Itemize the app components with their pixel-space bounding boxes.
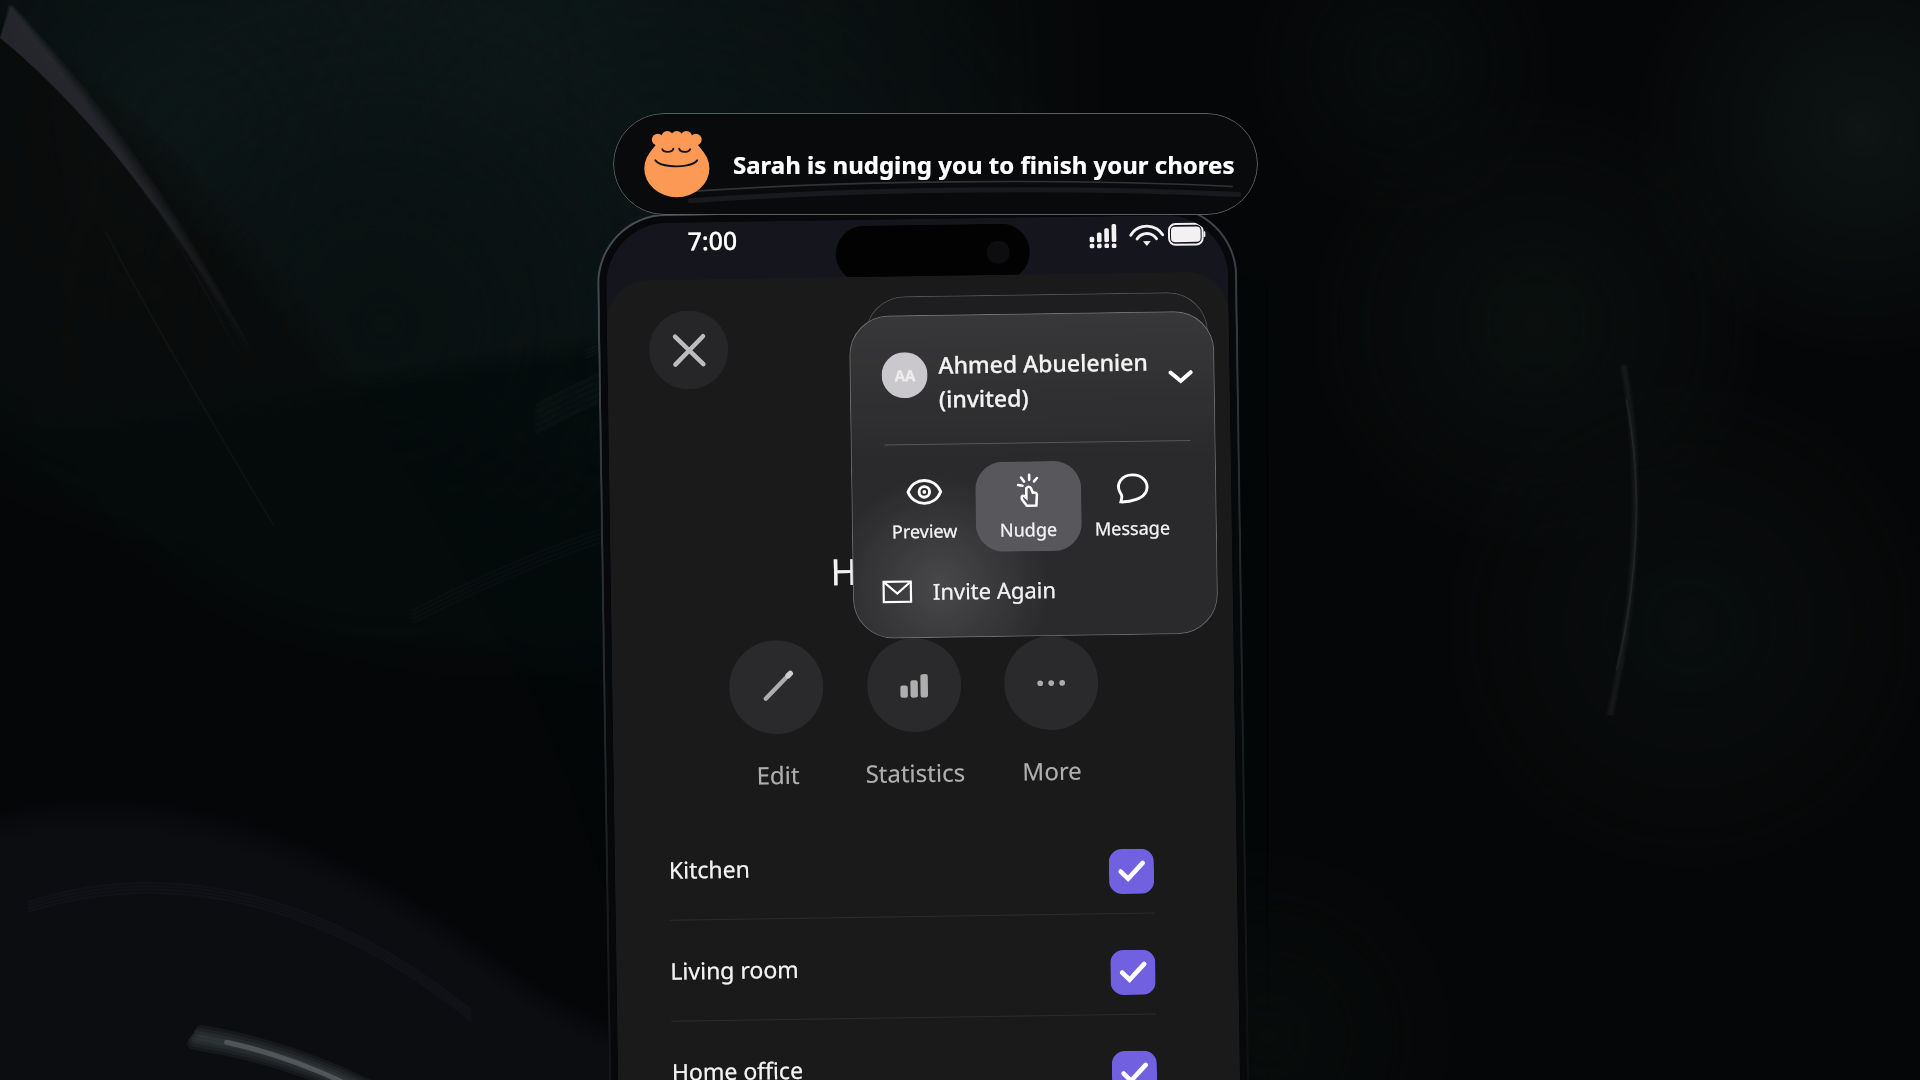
staticText: Sarah is nudging you to finish your chor… — [733, 148, 1235, 181]
staticText: Home — [830, 546, 934, 596]
staticText: Invite Again — [933, 574, 1057, 606]
button[interactable]: Expand — [1163, 359, 1198, 393]
staticText: Edit — [756, 758, 800, 791]
button[interactable]: Living room — [670, 913, 1156, 1021]
staticText: Kitchen — [669, 853, 750, 885]
staticText: Ahmed Abuelenien (invited) — [938, 345, 1169, 414]
button[interactable]: Invite Again — [882, 554, 1193, 625]
staticText: Nudge — [1000, 517, 1058, 543]
staticText: Message — [1095, 515, 1171, 541]
button[interactable]: Nudge — [975, 461, 1082, 552]
staticText: Statistics — [865, 755, 966, 790]
button[interactable]: More — [1003, 635, 1099, 731]
button[interactable]: Edit — [728, 639, 824, 735]
button[interactable]: Preview — [871, 462, 978, 554]
staticText: AA — [894, 365, 916, 385]
staticText: 7:00 — [687, 223, 738, 257]
staticText: More — [1022, 754, 1083, 787]
button[interactable]: Home office — [671, 1013, 1157, 1080]
button[interactable]: Close — [649, 310, 729, 390]
button[interactable]: Message — [1079, 459, 1186, 551]
staticText: Living room — [670, 953, 800, 986]
button[interactable]: Kitchen — [668, 812, 1155, 920]
button[interactable]: Statistics — [866, 637, 962, 733]
staticText: Preview — [892, 518, 958, 544]
staticText: Home office — [672, 1054, 804, 1080]
button[interactable]: Sarah is nudging you to finish your chor… — [613, 113, 1258, 215]
